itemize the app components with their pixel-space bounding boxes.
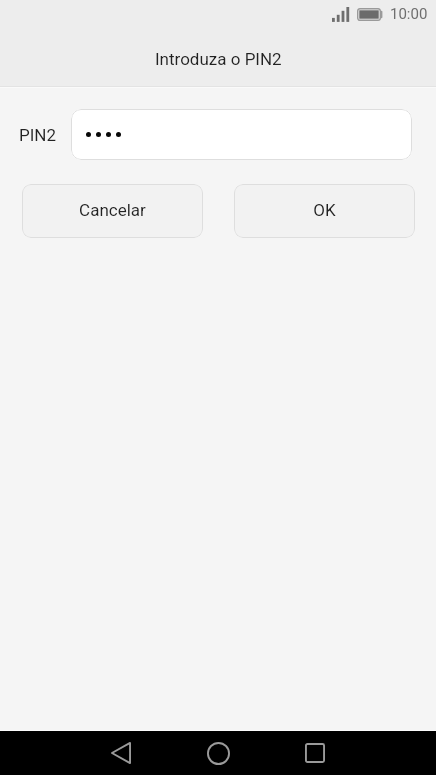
staticText: Cancelar: [79, 200, 146, 220]
button[interactable]: Home: [186, 731, 250, 775]
button[interactable]: Back: [89, 731, 153, 775]
button[interactable]: Cancelar: [22, 184, 203, 238]
button[interactable]: PIN2 entry field: [71, 109, 412, 160]
staticText: PIN2: [19, 125, 57, 145]
staticText: OK: [313, 200, 336, 220]
staticText: 10:00: [390, 5, 428, 23]
button[interactable]: Recent apps: [283, 731, 347, 775]
button[interactable]: OK: [234, 184, 415, 238]
staticText: Introduza o PIN2: [155, 49, 282, 69]
